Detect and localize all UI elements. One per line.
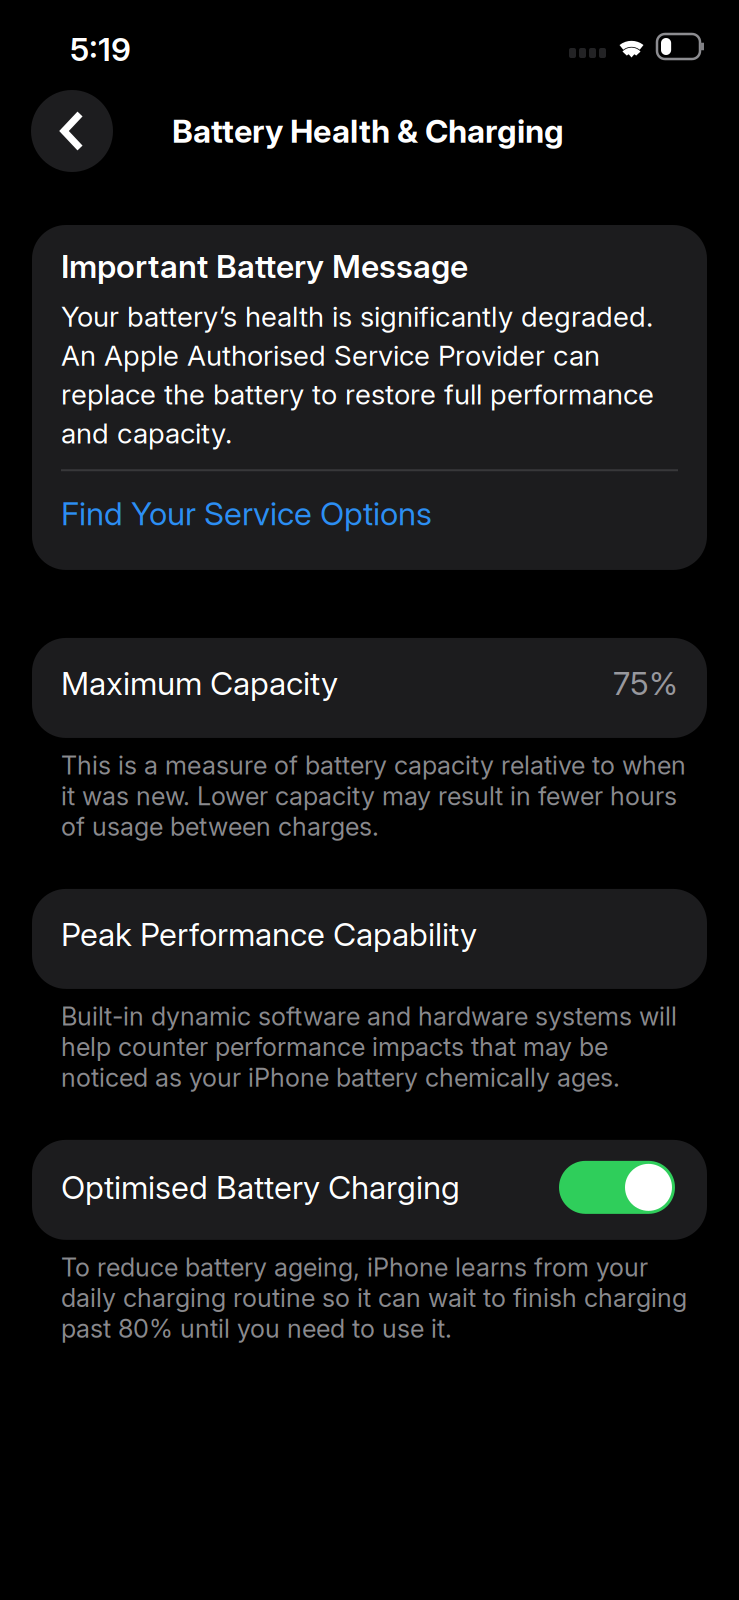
button[interactable]: Optimised Battery Charging bbox=[559, 1161, 675, 1214]
staticText: Your battery’s health is significantly d… bbox=[61, 300, 654, 450]
staticText: Battery Health & Charging bbox=[172, 112, 564, 150]
staticText: This is a measure of battery capacity re… bbox=[61, 750, 686, 842]
staticText: Find Your Service Options bbox=[61, 494, 432, 533]
button[interactable]: Back bbox=[31, 90, 113, 172]
staticText: 75% bbox=[613, 664, 678, 703]
staticText: Built-in dynamic software and hardware s… bbox=[61, 1001, 677, 1093]
button[interactable]: Peak Performance Capability bbox=[32, 889, 707, 989]
staticText: Important Battery Message bbox=[61, 247, 468, 286]
staticText: Optimised Battery Charging bbox=[61, 1168, 460, 1207]
staticText: Maximum Capacity bbox=[61, 664, 338, 703]
staticText: To reduce battery ageing, iPhone learns … bbox=[61, 1252, 687, 1344]
staticText: 5:19 bbox=[70, 30, 131, 69]
button[interactable]: Find Your Service Options bbox=[61, 494, 678, 533]
button[interactable]: Maximum Capacity bbox=[32, 638, 707, 738]
staticText: Peak Performance Capability bbox=[61, 915, 477, 954]
